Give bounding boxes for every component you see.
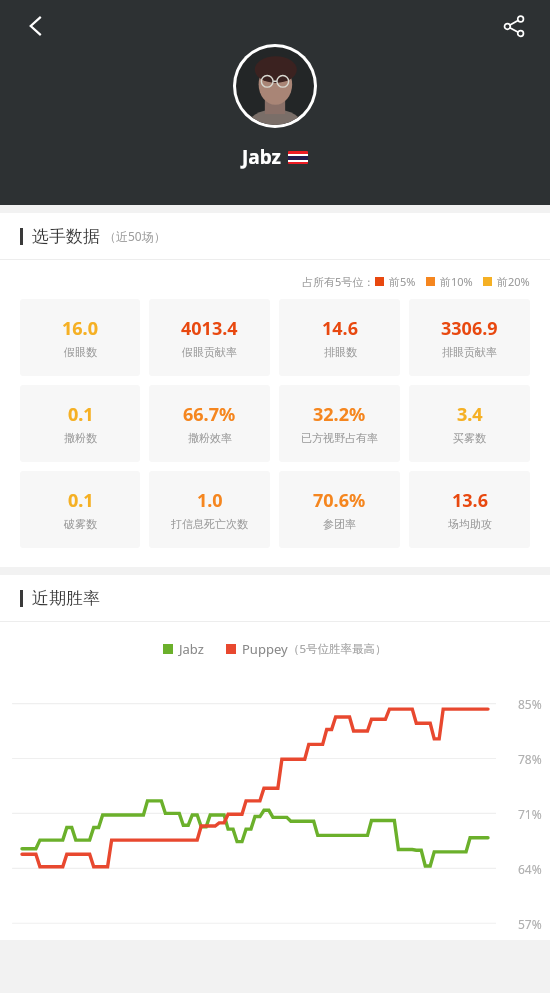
button[interactable]: 0.1: [20, 471, 140, 548]
staticText: （5号位胜率最高）: [288, 641, 387, 657]
staticText: 撒粉效率: [188, 431, 232, 445]
button[interactable]: 3306.9: [409, 299, 530, 376]
staticText: 假眼数: [64, 345, 97, 359]
staticText: 排眼贡献率: [442, 345, 497, 359]
staticText: 0.1: [68, 402, 94, 427]
staticText: 排眼数: [324, 345, 357, 359]
staticText: 4013.4: [181, 316, 238, 341]
staticText: 0.1: [68, 488, 94, 513]
button[interactable]: 1.0: [149, 471, 270, 548]
staticText: 选手数据: [32, 226, 100, 247]
staticText: 买雾数: [453, 431, 486, 445]
button[interactable]: Player avatar: [236, 47, 314, 125]
staticText: 参团率: [323, 517, 356, 531]
button[interactable]: 13.6: [409, 471, 530, 548]
staticText: 1.0: [197, 488, 223, 513]
button[interactable]: 66.7%: [149, 385, 270, 462]
staticText: 撒粉数: [64, 431, 97, 445]
button[interactable]: 32.2%: [279, 385, 400, 462]
staticText: 3.4: [457, 402, 483, 427]
staticText: 前10%: [440, 274, 473, 289]
staticText: 16.0: [62, 316, 98, 341]
staticText: 打信息死亡次数: [171, 517, 248, 531]
staticText: 占所有5号位：: [302, 274, 375, 289]
staticText: 前5%: [389, 274, 416, 289]
button[interactable]: 4013.4: [149, 299, 270, 376]
staticText: 85%: [518, 696, 542, 712]
button[interactable]: Back: [14, 4, 58, 48]
staticText: Jabz: [179, 640, 204, 658]
staticText: 66.7%: [183, 402, 236, 427]
staticText: 假眼贡献率: [182, 345, 237, 359]
staticText: （近50场）: [104, 228, 166, 244]
staticText: 已方视野占有率: [301, 431, 378, 445]
staticText: 13.6: [452, 488, 488, 513]
button[interactable]: Share: [492, 4, 536, 48]
staticText: 64%: [518, 861, 542, 877]
staticText: Puppey: [242, 640, 288, 658]
staticText: 70.6%: [313, 488, 366, 513]
staticText: 14.6: [322, 316, 358, 341]
staticText: 场均助攻: [448, 517, 492, 531]
staticText: 71%: [518, 806, 542, 822]
button[interactable]: 3.4: [409, 385, 530, 462]
staticText: 3306.9: [441, 316, 498, 341]
staticText: Jabz: [242, 144, 281, 170]
staticText: 57%: [518, 916, 542, 932]
staticText: 78%: [518, 751, 542, 767]
staticText: 32.2%: [313, 402, 366, 427]
button[interactable]: 16.0: [20, 299, 140, 376]
staticText: 近期胜率: [32, 588, 100, 609]
button[interactable]: 70.6%: [279, 471, 400, 548]
button[interactable]: 14.6: [279, 299, 400, 376]
staticText: 破雾数: [64, 517, 97, 531]
button[interactable]: 0.1: [20, 385, 140, 462]
staticText: 前20%: [497, 274, 530, 289]
